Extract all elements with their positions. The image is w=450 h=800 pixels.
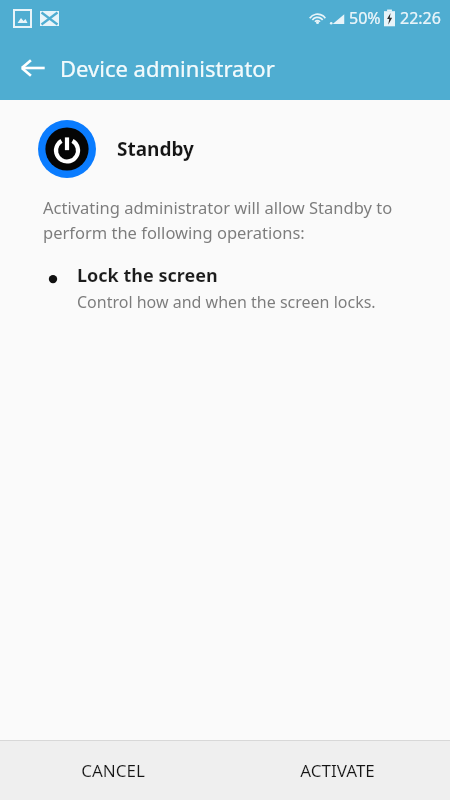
staticText: Device administrator <box>60 53 275 83</box>
staticText: Activating administrator will allow Stan… <box>43 196 410 243</box>
staticText: Control how and when the screen locks. <box>77 291 376 313</box>
staticText: 50% <box>349 7 381 29</box>
staticText: Lock the screen <box>77 263 218 288</box>
staticText: 22:26 <box>400 7 441 29</box>
button[interactable]: CANCEL <box>0 741 225 800</box>
staticText: ACTIVATE <box>300 759 375 782</box>
button[interactable]: ACTIVATE <box>225 741 450 800</box>
staticText: CANCEL <box>81 759 145 782</box>
staticText: Standby <box>117 136 194 162</box>
button[interactable]: Back <box>11 46 55 90</box>
